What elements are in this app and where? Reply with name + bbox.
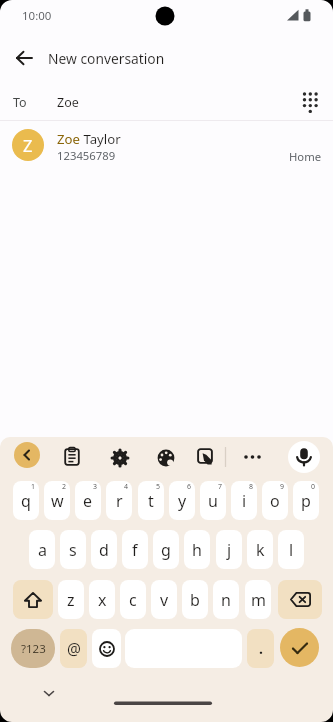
staticText: New conversation	[48, 49, 165, 68]
button[interactable]	[152, 444, 180, 472]
staticText: Zoe Taylor	[57, 130, 121, 148]
staticText: u	[208, 490, 218, 512]
button[interactable]	[294, 88, 324, 118]
button[interactable]: d	[91, 530, 117, 569]
staticText: c	[129, 589, 137, 611]
button[interactable]	[0, 122, 333, 168]
staticText: l	[289, 539, 294, 561]
staticText: Home	[289, 149, 322, 164]
button[interactable]: x	[89, 580, 115, 619]
staticText: d	[99, 539, 109, 561]
button[interactable]: m	[245, 580, 271, 619]
staticText: v	[160, 589, 169, 611]
staticText: 7	[218, 482, 223, 492]
button[interactable]	[10, 47, 38, 69]
staticText: Zoe	[57, 94, 79, 111]
button[interactable]: p	[293, 481, 319, 520]
staticText: s	[69, 539, 77, 561]
button[interactable]: @	[60, 629, 87, 668]
staticText: h	[192, 539, 202, 561]
button[interactable]: l	[278, 530, 304, 569]
button[interactable]: c	[120, 580, 146, 619]
staticText: b	[190, 589, 200, 611]
staticText: x	[98, 589, 107, 611]
button[interactable]	[58, 443, 86, 471]
button[interactable]: g	[153, 530, 179, 569]
button[interactable]: b	[182, 580, 208, 619]
button[interactable]	[125, 629, 242, 668]
staticText: 0	[311, 482, 316, 492]
button[interactable]	[14, 442, 40, 468]
button[interactable]: w	[44, 481, 70, 520]
staticText: i	[242, 490, 247, 512]
button[interactable]: q	[13, 481, 39, 520]
button[interactable]	[278, 580, 322, 619]
staticText: a	[38, 539, 47, 561]
button[interactable]	[92, 629, 121, 668]
button[interactable]: v	[151, 580, 177, 619]
staticText: 4	[124, 482, 129, 492]
button[interactable]: h	[184, 530, 210, 569]
button[interactable]	[288, 441, 320, 473]
button[interactable]: ?123	[11, 629, 55, 668]
button[interactable]: s	[60, 530, 86, 569]
button[interactable]: u	[200, 481, 226, 520]
staticText: n	[221, 589, 231, 611]
staticText: 6	[187, 482, 192, 492]
button[interactable]: n	[213, 580, 239, 619]
staticText: t	[148, 490, 154, 512]
staticText: 5	[156, 482, 161, 492]
staticText: 10:00	[22, 8, 52, 24]
staticText: m	[251, 589, 266, 611]
staticText: @	[67, 638, 81, 659]
staticText: 9	[280, 482, 285, 492]
staticText: Z	[23, 134, 33, 156]
staticText: 1	[31, 482, 36, 492]
button[interactable]: y	[169, 481, 195, 520]
button[interactable]: r	[106, 481, 132, 520]
button[interactable]: i	[231, 481, 257, 520]
staticText: f	[132, 539, 138, 561]
button[interactable]: j	[216, 530, 242, 569]
button[interactable]: f	[122, 530, 148, 569]
button[interactable]: o	[262, 481, 288, 520]
button[interactable]	[106, 444, 134, 472]
button[interactable]: k	[247, 530, 273, 569]
button[interactable]: .	[247, 629, 274, 668]
staticText: g	[161, 539, 171, 561]
button[interactable]	[280, 628, 319, 667]
staticText: 123456789	[57, 148, 116, 163]
staticText: k	[256, 539, 265, 561]
staticText: r	[116, 490, 123, 512]
button[interactable]: t	[138, 481, 164, 520]
button[interactable]	[191, 442, 219, 470]
staticText: e	[83, 490, 93, 512]
staticText: .	[259, 639, 263, 658]
staticText: 8	[249, 482, 254, 492]
button[interactable]: a	[29, 530, 55, 569]
staticText: 3	[93, 482, 98, 492]
staticText: To	[13, 94, 27, 111]
staticText: j	[227, 539, 232, 561]
staticText: y	[178, 490, 187, 512]
button[interactable]	[44, 84, 288, 118]
staticText: o	[270, 490, 280, 512]
staticText: p	[301, 490, 311, 512]
button[interactable]: e	[75, 481, 101, 520]
staticText: w	[51, 490, 64, 512]
staticText: ?123	[21, 641, 46, 657]
button[interactable]: z	[58, 580, 84, 619]
staticText: 2	[62, 482, 67, 492]
staticText: z	[67, 589, 75, 611]
staticText: q	[21, 490, 31, 512]
button[interactable]	[13, 580, 53, 619]
